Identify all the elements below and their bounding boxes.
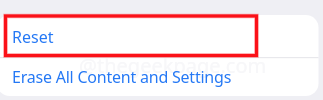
staticText: Erase All Content and Settings xyxy=(12,66,232,88)
button[interactable]: Reset xyxy=(0,15,318,57)
staticText: @thegeekpage.com xyxy=(79,52,267,79)
button[interactable]: Erase All Content and Settings xyxy=(0,58,318,96)
staticText: Reset xyxy=(12,26,54,48)
